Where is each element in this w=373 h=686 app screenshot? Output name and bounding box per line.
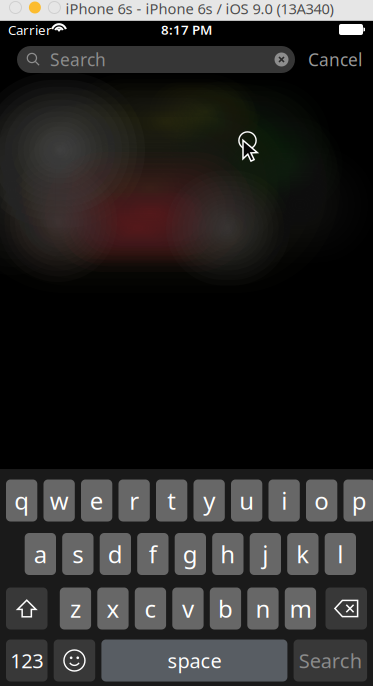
staticText: z	[70, 593, 81, 624]
button[interactable]: q	[6, 479, 37, 521]
staticText: q	[14, 485, 29, 516]
button[interactable]: v	[172, 587, 204, 629]
button[interactable]: b	[210, 587, 241, 629]
staticText: v	[182, 593, 194, 624]
button[interactable]: n	[247, 587, 279, 629]
button[interactable]: space	[101, 639, 287, 681]
button[interactable]: u	[231, 479, 262, 521]
button[interactable]: Zoom window	[48, 1, 60, 13]
button[interactable]: Emoji keyboard	[54, 639, 95, 681]
button[interactable]: c	[135, 587, 166, 629]
staticText: u	[239, 485, 254, 516]
button[interactable]: s	[62, 533, 93, 575]
button[interactable]: z	[60, 587, 91, 629]
staticText: e	[90, 485, 104, 516]
button[interactable]: Cancel	[302, 44, 368, 74]
staticText: g	[183, 538, 198, 570]
staticText: k	[296, 538, 309, 570]
button[interactable]: p	[343, 479, 373, 521]
button[interactable]: g	[175, 533, 206, 575]
button[interactable]: Delete	[325, 587, 367, 629]
staticText: p	[352, 485, 367, 516]
staticText: d	[108, 538, 123, 570]
staticText: h	[220, 538, 235, 570]
button[interactable]: r	[118, 479, 150, 521]
staticText: j	[262, 538, 268, 570]
button[interactable]: y	[193, 479, 225, 521]
staticText: y	[203, 485, 215, 516]
staticText: f	[149, 538, 157, 570]
staticText: o	[314, 485, 329, 516]
button[interactable]: f	[137, 533, 168, 575]
button[interactable]: Clear text	[274, 52, 288, 66]
staticText: r	[129, 485, 139, 516]
button[interactable]: w	[43, 479, 75, 521]
button[interactable]: m	[285, 587, 316, 629]
button[interactable]: k	[287, 533, 318, 575]
button[interactable]: i	[268, 479, 300, 521]
staticText: a	[34, 538, 47, 570]
button[interactable]: o	[306, 479, 337, 521]
button[interactable]: t	[156, 479, 187, 521]
button[interactable]: Search	[294, 639, 367, 681]
button[interactable]: Minimise window	[29, 1, 41, 13]
staticText: iPhone 6s - iPhone 6s / iOS 9.0 (13A340)	[65, 0, 333, 18]
staticText: n	[255, 593, 270, 624]
staticText: t	[167, 485, 176, 516]
staticText: b	[218, 593, 233, 624]
staticText: x	[106, 593, 119, 624]
staticText: m	[289, 593, 311, 624]
staticText: i	[281, 485, 287, 516]
staticText: Search	[299, 647, 362, 674]
button[interactable]: l	[325, 533, 356, 575]
button[interactable]: e	[81, 479, 112, 521]
button[interactable]: d	[100, 533, 131, 575]
button[interactable]: 123	[6, 639, 47, 681]
staticText: 123	[10, 647, 43, 674]
staticText: Cancel	[308, 48, 362, 71]
staticText: Search	[50, 48, 106, 71]
staticText: l	[337, 538, 343, 570]
button[interactable]: x	[97, 587, 129, 629]
staticText: c	[144, 593, 156, 624]
staticText: Carrier	[8, 21, 52, 39]
button[interactable]: j	[250, 533, 281, 575]
button[interactable]: Close window	[9, 1, 21, 13]
button[interactable]: Shift	[6, 587, 47, 629]
staticText: space	[167, 647, 221, 674]
staticText: s	[72, 538, 83, 570]
button[interactable]: h	[212, 533, 243, 575]
staticText: 8:17 PM	[161, 21, 212, 38]
staticText: w	[50, 485, 69, 516]
button[interactable]: a	[25, 533, 56, 575]
